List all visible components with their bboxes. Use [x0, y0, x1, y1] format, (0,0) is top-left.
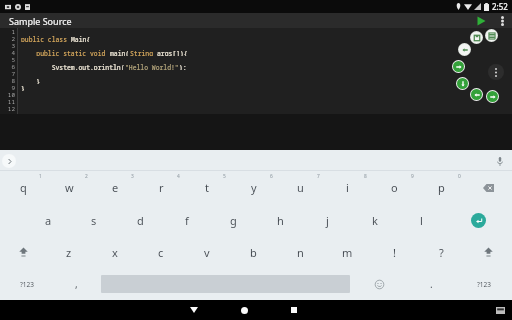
staticText: 12	[0, 105, 15, 112]
button[interactable]: h	[257, 204, 304, 236]
staticText: }	[21, 84, 25, 91]
button[interactable]: More options	[492, 13, 512, 28]
button[interactable]: 9	[371, 171, 418, 204]
button[interactable]: j	[304, 204, 351, 236]
button[interactable]: Move down	[457, 78, 468, 89]
button[interactable]: b	[230, 236, 277, 268]
button[interactable]: a	[25, 204, 71, 236]
staticText: );	[179, 63, 187, 70]
button[interactable]: f	[163, 204, 210, 236]
button[interactable]: Home	[219, 300, 269, 320]
button[interactable]: Enter	[445, 204, 512, 236]
button[interactable]: ?123	[0, 268, 53, 300]
staticText: g	[230, 213, 237, 228]
button[interactable]: ?	[418, 236, 465, 268]
staticText: "Hello World!"	[125, 63, 179, 70]
button[interactable]: Format	[486, 30, 497, 41]
button[interactable]: !	[371, 236, 418, 268]
staticText: x	[112, 245, 118, 260]
button[interactable]: ,	[53, 268, 100, 300]
button[interactable]: 7	[277, 171, 324, 204]
button[interactable]: 3	[92, 171, 138, 204]
staticText: 2	[0, 35, 15, 42]
button[interactable]: Backspace	[465, 171, 512, 204]
staticText: ?123	[477, 280, 491, 289]
staticText: h	[277, 213, 284, 228]
button[interactable]: v	[184, 236, 230, 268]
staticText: 4	[0, 49, 15, 56]
button[interactable]: Save	[471, 32, 482, 43]
button[interactable]: 0	[418, 171, 465, 204]
staticText: p	[438, 180, 445, 195]
button[interactable]: 1	[0, 171, 46, 204]
button[interactable]: 2	[46, 171, 92, 204]
staticText: 1	[39, 173, 42, 180]
staticText: 5	[0, 56, 15, 63]
staticText: 2	[85, 173, 88, 180]
button[interactable]: d	[117, 204, 163, 236]
button[interactable]: k	[351, 204, 398, 236]
staticText: 8	[0, 77, 15, 84]
staticText: n	[297, 245, 304, 260]
staticText: w	[65, 180, 74, 195]
button[interactable]: ?123	[455, 268, 512, 300]
button[interactable]: s	[71, 204, 117, 236]
button[interactable]: c	[138, 236, 184, 268]
staticText: public class	[21, 35, 71, 42]
staticText: i	[346, 180, 349, 195]
staticText: 9	[411, 173, 414, 180]
button[interactable]: 6	[230, 171, 277, 204]
button[interactable]: More actions	[488, 64, 504, 80]
button[interactable]: Run	[470, 13, 492, 28]
button[interactable]: 8	[324, 171, 371, 204]
staticText: k	[372, 213, 378, 228]
button[interactable]: Move left	[471, 89, 482, 100]
staticText: u	[297, 180, 304, 195]
staticText: e	[112, 180, 119, 195]
button[interactable]: Voice input	[493, 154, 507, 168]
staticText: 5	[223, 173, 226, 180]
staticText: Sample Source	[9, 15, 72, 27]
staticText: q	[20, 180, 27, 195]
staticText: 3	[131, 173, 134, 180]
button[interactable]: Redo	[453, 61, 464, 72]
staticText: args[]){	[157, 49, 188, 56]
staticText: v	[204, 245, 210, 260]
staticText: l	[420, 213, 423, 228]
button[interactable]: Move right	[487, 91, 498, 102]
staticText: 2:52	[492, 1, 508, 12]
button[interactable]: m	[324, 236, 371, 268]
button[interactable]: n	[277, 236, 324, 268]
staticText: a	[45, 213, 52, 228]
button[interactable]: Emoji	[351, 268, 408, 300]
button[interactable]: 5	[184, 171, 230, 204]
button[interactable]: Hide keyboard	[169, 300, 219, 320]
button[interactable]: 4	[138, 171, 184, 204]
staticText: 10	[0, 91, 15, 98]
button[interactable]: g	[210, 204, 257, 236]
staticText: r	[159, 180, 164, 195]
button[interactable]: z	[46, 236, 92, 268]
button[interactable]: Undo	[459, 44, 470, 55]
button[interactable]: Shift	[0, 236, 46, 268]
staticText: 4	[177, 173, 180, 180]
staticText: d	[137, 213, 144, 228]
staticText: String	[130, 49, 157, 56]
staticText: m	[342, 245, 353, 260]
staticText: j	[326, 213, 329, 228]
button[interactable]: Switch keyboard	[488, 300, 512, 320]
staticText: o	[391, 180, 398, 195]
button[interactable]: Expand toolbar	[2, 154, 16, 168]
staticText: 1	[0, 28, 15, 35]
button[interactable]: l	[398, 204, 445, 236]
staticText: t	[205, 180, 209, 195]
button[interactable]: Shift	[465, 236, 512, 268]
staticText: c	[158, 245, 164, 260]
button[interactable]: Recent apps	[269, 300, 319, 320]
button[interactable]: x	[92, 236, 138, 268]
staticText: 8	[364, 173, 367, 180]
button[interactable]: .	[408, 268, 455, 300]
staticText: ?	[439, 245, 444, 260]
staticText: }	[21, 77, 41, 84]
